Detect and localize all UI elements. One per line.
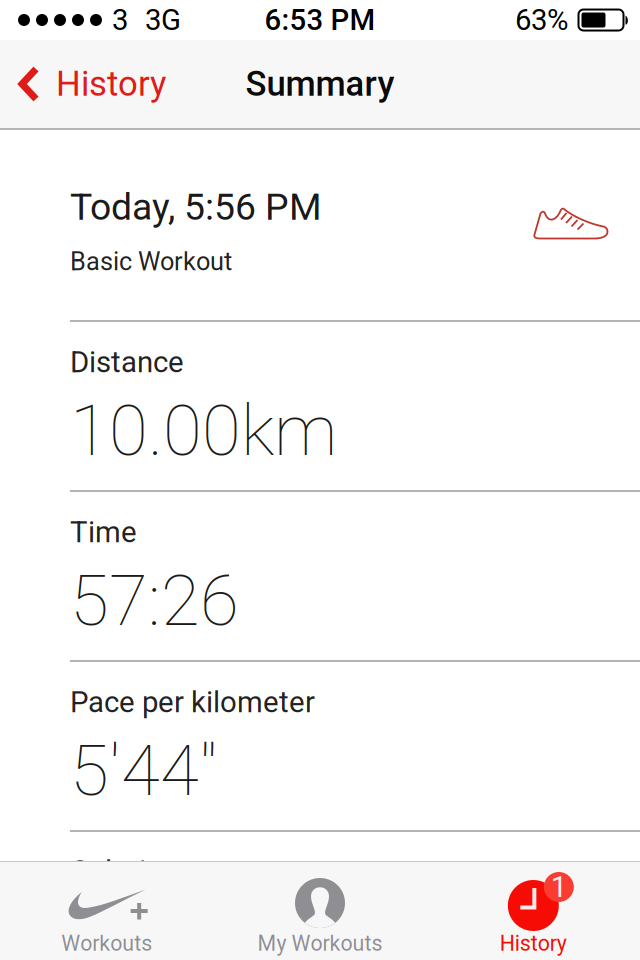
staticText: 3 [112, 3, 128, 37]
staticText: History [500, 931, 567, 956]
staticText: History [56, 64, 166, 104]
staticText: 3G [145, 3, 181, 37]
staticText: Distance [70, 345, 184, 379]
staticText: Pace per kilometer [70, 685, 315, 719]
staticText: 57:26 [70, 559, 239, 642]
staticText: Workouts [61, 931, 152, 956]
staticText: My Workouts [257, 931, 382, 956]
button[interactable]: Workouts [0, 862, 213, 960]
staticText: Time [70, 515, 137, 549]
button[interactable]: History [0, 52, 178, 116]
staticText: 10.00km [70, 389, 337, 472]
staticText: Summary [245, 64, 394, 104]
staticText: 6:53 PM [264, 3, 375, 37]
button[interactable]: 1 [427, 862, 640, 960]
staticText: 5'44" [70, 729, 217, 812]
staticText: Today, 5:56 PM [70, 185, 322, 229]
staticText: 1 [551, 870, 567, 904]
staticText: 63% [515, 3, 568, 37]
staticText: Calories [70, 854, 177, 888]
staticText: Basic Workout [70, 247, 232, 276]
button[interactable]: My Workouts [213, 862, 427, 960]
